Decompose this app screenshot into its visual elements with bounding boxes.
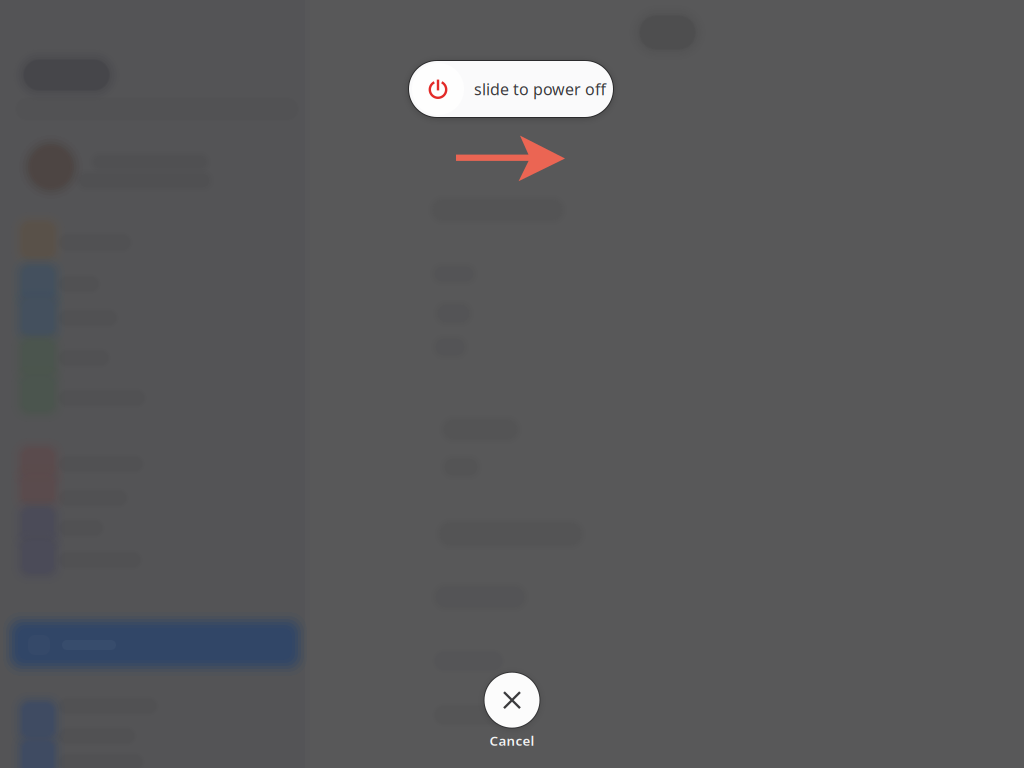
staticText: Cancel [489,732,534,749]
button[interactable]: Cancel [484,673,539,749]
staticText: slide to power off [474,78,606,100]
button[interactable]: slide to power off [409,61,613,117]
